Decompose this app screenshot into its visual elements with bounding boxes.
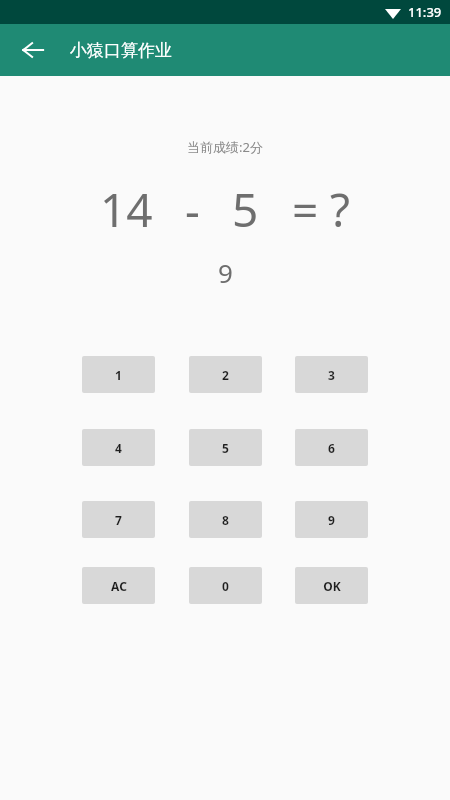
staticText: 6: [328, 440, 335, 456]
staticText: 4: [115, 440, 122, 456]
staticText: 当前成绩:2分: [187, 138, 263, 156]
button[interactable]: 3: [295, 356, 368, 393]
staticText: 2: [222, 367, 229, 383]
button[interactable]: 1: [82, 356, 155, 393]
staticText: 0: [222, 578, 229, 594]
staticText: 3: [328, 367, 335, 383]
button[interactable]: Back: [11, 28, 55, 72]
button[interactable]: 5: [189, 429, 262, 466]
button[interactable]: 8: [189, 501, 262, 538]
button[interactable]: 4: [82, 429, 155, 466]
staticText: 小猿口算作业: [70, 40, 172, 61]
staticText: 11:39: [408, 3, 442, 21]
button[interactable]: AC: [82, 567, 155, 604]
staticText: 1: [115, 367, 122, 383]
button[interactable]: 6: [295, 429, 368, 466]
button[interactable]: OK: [295, 567, 368, 604]
button[interactable]: 9: [295, 501, 368, 538]
button[interactable]: 7: [82, 501, 155, 538]
button[interactable]: 0: [189, 567, 262, 604]
staticText: AC: [111, 578, 127, 594]
staticText: =: [292, 178, 319, 241]
staticText: 14: [100, 178, 153, 241]
staticText: 5: [222, 440, 229, 456]
staticText: OK: [323, 578, 341, 594]
staticText: ?: [330, 178, 350, 241]
staticText: 8: [222, 512, 229, 528]
button[interactable]: 2: [189, 356, 262, 393]
staticText: 9: [218, 255, 233, 290]
staticText: 9: [328, 512, 335, 528]
staticText: -: [185, 178, 200, 241]
staticText: 5: [232, 178, 259, 241]
staticText: 7: [115, 512, 122, 528]
